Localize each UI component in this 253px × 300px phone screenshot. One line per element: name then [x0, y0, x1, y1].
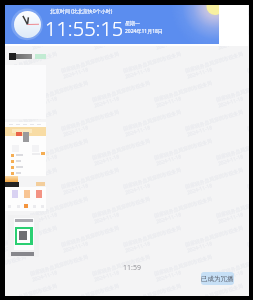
staticText: 2024-11-18 [217, 37, 245, 51]
staticText: 国家税务总局深圳市税务局 [5, 5, 57, 16]
button[interactable]: 已成为冗播 [201, 272, 234, 285]
staticText: 国家税务总局深圳市税务局 [29, 253, 88, 277]
staticText: 国家税务总局深圳市税务局 [215, 21, 249, 45]
staticText: 2024-11-18 [124, 182, 152, 196]
staticText: 2024-11-18 [62, 240, 90, 254]
staticText: 国家税务总局深圳市税务局 [5, 253, 26, 277]
staticText: 国家税务总局深圳市税务局 [29, 21, 88, 45]
staticText: 2024-11-18 [31, 95, 59, 109]
staticText: 2024-11-18 [155, 269, 183, 283]
button[interactable] [8, 215, 39, 257]
button[interactable] [5, 122, 46, 211]
staticText: 2024-11-18 [5, 124, 28, 138]
staticText: 2024-11-18 [93, 95, 121, 109]
staticText: 2024-11-18 [5, 182, 28, 196]
button[interactable]: 北京时间 (比北京快0个小时) [5, 5, 219, 44]
staticText: 2024-11-18 [186, 66, 214, 80]
staticText: 国家税务总局深圳市税务局 [29, 195, 88, 219]
staticText: 11:55:15 [45, 15, 124, 42]
staticText: 国家税务总局深圳市税务局 [29, 137, 88, 161]
staticText: 国家税务总局深圳市税务局 [5, 224, 57, 248]
staticText: 北京时间 (比北京快0个小时) [50, 8, 113, 15]
staticText: 2024-11-18 [248, 124, 249, 138]
staticText: 国家税务总局深圳市税务局 [184, 282, 243, 296]
staticText: 国家税务总局深圳市税务局 [5, 166, 57, 190]
staticText: 2024-11-18 [217, 269, 245, 283]
staticText: 2024-11-18 [155, 95, 183, 109]
staticText: 2024-11-18 [124, 240, 152, 254]
staticText: 2024-11-18 [5, 240, 28, 254]
staticText: 2024-11-18 [217, 95, 245, 109]
staticText: 2024-11-18 [155, 211, 183, 225]
staticText: 国家税务总局深圳市税务局 [5, 50, 57, 74]
staticText: 2024-11-18 [5, 8, 28, 22]
staticText: 国家税务总局深圳市税务局 [5, 137, 26, 161]
staticText: 2024年11月18日 [125, 28, 163, 35]
staticText: 2024-11-18 [186, 124, 214, 138]
staticText: 2024-11-18 [186, 240, 214, 254]
staticText: 2024-11-18 [31, 37, 59, 51]
staticText: 国家税务总局深圳市税务局 [91, 21, 150, 45]
staticText: 2024-11-18 [155, 37, 183, 51]
staticText: 2024-11-18 [217, 211, 245, 225]
staticText: 2024-11-18 [155, 153, 183, 167]
staticText: 2024-11-18 [124, 124, 152, 138]
staticText: 国家税务总局深圳市税务局 [215, 253, 249, 277]
staticText: 国家税务总局深圳市税务局 [246, 5, 249, 16]
staticText: 11:59 [123, 263, 141, 273]
staticText: 国家税务总局深圳市税务局 [91, 253, 150, 277]
staticText: 2024-11-18 [93, 37, 121, 51]
staticText: 2024-11-18 [31, 269, 59, 283]
staticText: 已成为冗播 [201, 275, 234, 283]
staticText: 2024-11-18 [62, 124, 90, 138]
staticText: 国家税务总局深圳市税务局 [5, 21, 26, 45]
staticText: 国家税务总局深圳市税务局 [5, 108, 57, 132]
staticText: 2024-11-18 [217, 153, 245, 167]
staticText: 2024-11-18 [186, 8, 214, 22]
staticText: 国家税务总局深圳市税务局 [184, 5, 243, 16]
staticText: 星期一 [125, 20, 140, 26]
staticText: 2024-11-18 [248, 240, 249, 254]
staticText: 2024-11-18 [31, 153, 59, 167]
staticText: 国家税务总局深圳市税务局 [29, 79, 88, 103]
staticText: 2024-11-18 [248, 66, 249, 80]
staticText: 国家税务总局深圳市税务局 [153, 21, 212, 45]
staticText: 2024-11-18 [248, 8, 249, 22]
staticText: 2024-11-18 [124, 8, 152, 22]
staticText: 2024-11-18 [93, 211, 121, 225]
staticText: 2024-11-18 [62, 182, 90, 196]
staticText: 2024-11-18 [62, 8, 90, 22]
staticText: 2024-11-18 [248, 182, 249, 196]
staticText: 2024-11-18 [31, 211, 59, 225]
staticText: 国家税务总局深圳市税务局 [5, 195, 26, 219]
